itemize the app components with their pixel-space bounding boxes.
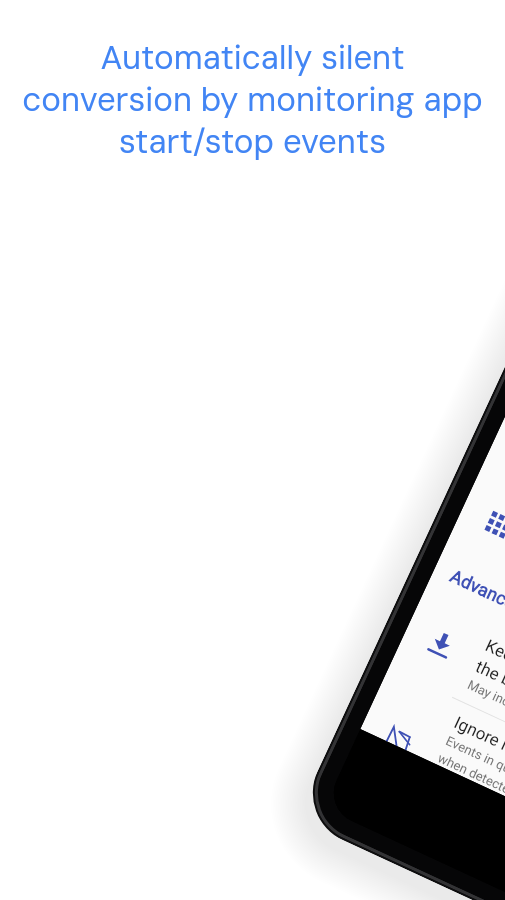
button[interactable]: Keep the service alive in the background (393, 602, 505, 791)
staticText: Ignore noisy events (451, 712, 505, 792)
staticText: Automatically silent conversion by monit… (0, 36, 505, 163)
staticText: Keep the service alive in the background (473, 635, 505, 750)
staticText: Events in quick succession when detected… (436, 733, 505, 836)
button[interactable]: Apps (484, 511, 505, 539)
staticText: Advanced (447, 565, 505, 618)
staticText: May increase battery usage (465, 677, 505, 757)
button[interactable]: Ignore noisy events (356, 677, 505, 871)
